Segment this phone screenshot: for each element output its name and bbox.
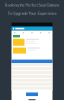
staticText: To Upgrade Your Experience [7,10,56,16]
staticText: Booking the Perfect Seat Options [4,2,59,7]
